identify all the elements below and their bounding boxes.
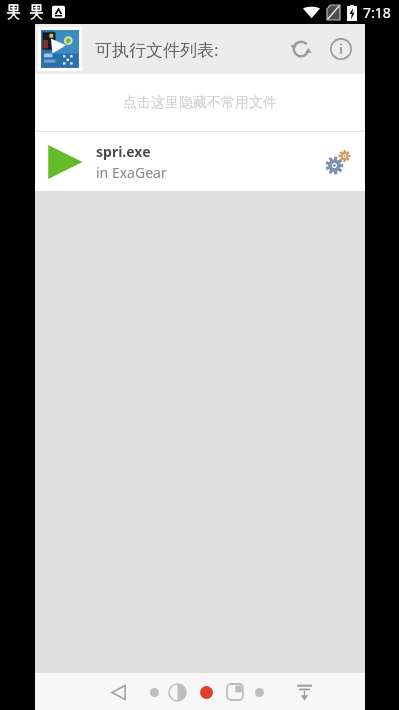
button[interactable]: Refresh (281, 29, 321, 69)
button[interactable]: Info (321, 29, 361, 69)
button[interactable]: Hide bar (290, 678, 318, 706)
button[interactable]: Screenshot (223, 680, 247, 704)
button[interactable]: Back (103, 677, 133, 707)
staticText: 可执行文件列表: (95, 38, 219, 61)
button[interactable]: Home (165, 680, 189, 704)
staticText: spri.exe (96, 142, 151, 161)
button[interactable]: Settings (315, 139, 361, 185)
button[interactable]: App icon (38, 27, 82, 71)
button[interactable]: 点击这里隐藏不常用文件 (35, 74, 365, 131)
button[interactable]: spri.exe (35, 132, 365, 191)
button[interactable]: Record (195, 681, 217, 703)
button[interactable]: Recent (145, 683, 163, 701)
button[interactable]: More (250, 683, 268, 701)
staticText: in ExaGear (96, 163, 167, 182)
staticText: 7:18 (363, 3, 391, 22)
staticText: 点击这里隐藏不常用文件 (123, 94, 277, 112)
